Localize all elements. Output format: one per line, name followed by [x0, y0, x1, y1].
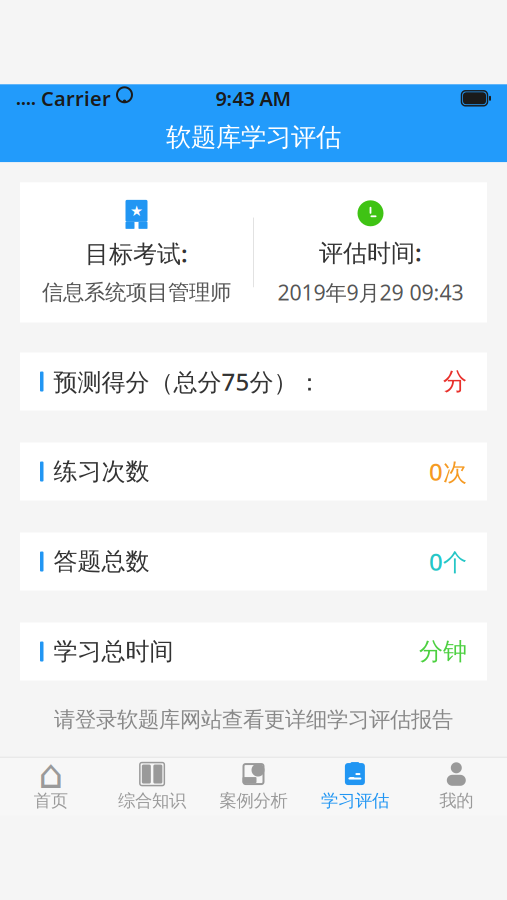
staticText: 0次 [429, 456, 467, 487]
button[interactable]: 📈 [304, 758, 406, 816]
button[interactable]: 我的 [406, 758, 507, 816]
button[interactable]: 答题总数 [20, 532, 487, 590]
staticText: 0个 [429, 546, 467, 577]
staticText: .... [16, 87, 36, 110]
button[interactable]: 综合知识 [101, 758, 203, 816]
button[interactable]: 练习次数 [20, 442, 487, 500]
button[interactable]: ⌂ [0, 758, 101, 816]
staticText: 我的 [439, 790, 473, 811]
staticText: 9:43 AM [215, 85, 291, 112]
staticText: ⌂ [38, 751, 63, 797]
staticText: 信息系统项目管理师 [42, 279, 231, 305]
staticText: Carrier [41, 85, 111, 112]
button[interactable]: 预测得分（总分75分）： [20, 352, 487, 410]
staticText: 学习评估 [321, 790, 389, 811]
button[interactable]: 学习总时间 [20, 622, 487, 680]
staticText: 综合知识 [118, 790, 186, 811]
button[interactable]: 案例分析 [203, 758, 304, 816]
staticText: 评估时间: [319, 236, 422, 268]
staticText: 2019年9月29 09:43 [277, 278, 463, 306]
staticText: 学习总时间 [53, 637, 173, 666]
staticText: 案例分析 [219, 790, 287, 811]
staticText: 目标考试: [85, 237, 188, 269]
staticText: 预测得分（总分75分）： [53, 366, 321, 397]
staticText: 请登录软题库网站查看更详细学习评估报告 [54, 706, 453, 733]
staticText: 首页 [34, 790, 68, 811]
staticText: ★ [130, 202, 143, 219]
staticText: 答题总数 [53, 547, 149, 576]
staticText: 分钟 [419, 637, 467, 666]
staticText: 分 [443, 367, 467, 396]
staticText: 软题库学习评估 [166, 122, 341, 153]
staticText: 练习次数 [53, 457, 149, 486]
